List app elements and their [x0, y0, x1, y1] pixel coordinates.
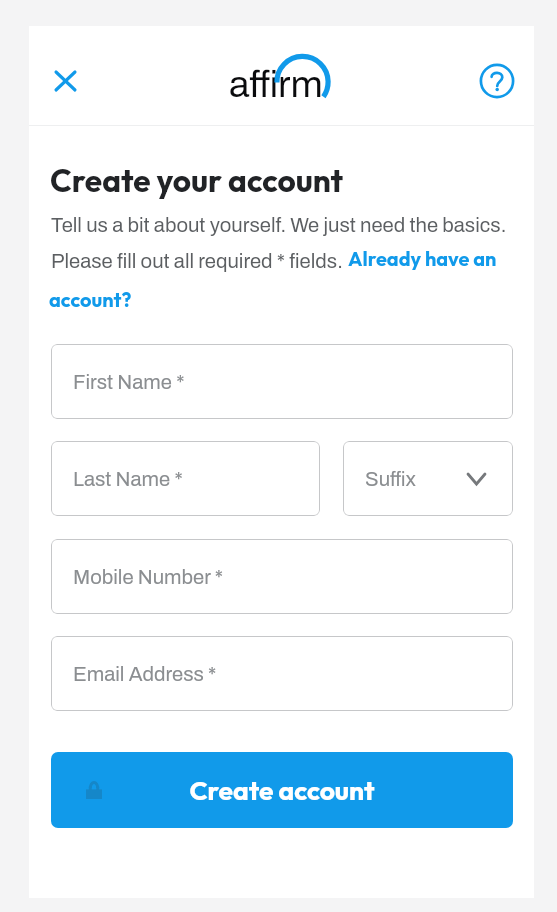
button[interactable]: Help	[473, 57, 521, 105]
staticText: Suffix	[365, 468, 417, 490]
button[interactable]: Last Name *	[51, 441, 320, 516]
staticText: Mobile Number *	[73, 566, 224, 588]
button[interactable]: Email Address *	[51, 636, 513, 711]
button[interactable]: Close	[41, 57, 89, 105]
staticText: Please fill out all required * fields.	[51, 250, 348, 272]
button[interactable]: Suffix	[343, 441, 513, 516]
staticText: Tell us a bit about yourself. We just ne…	[51, 214, 507, 236]
button[interactable]: Already have an	[348, 246, 497, 271]
staticText: Last Name *	[73, 468, 183, 490]
button[interactable]: First Name *	[51, 344, 513, 419]
button[interactable]: account?	[49, 287, 132, 312]
staticText: affirm	[229, 64, 323, 105]
button[interactable]: Mobile Number *	[51, 539, 513, 614]
staticText: Create account	[189, 774, 375, 807]
staticText: First Name *	[73, 371, 185, 393]
staticText: Create your account	[50, 160, 344, 200]
button[interactable]: Create account	[51, 752, 513, 828]
staticText: Email Address *	[73, 663, 217, 685]
